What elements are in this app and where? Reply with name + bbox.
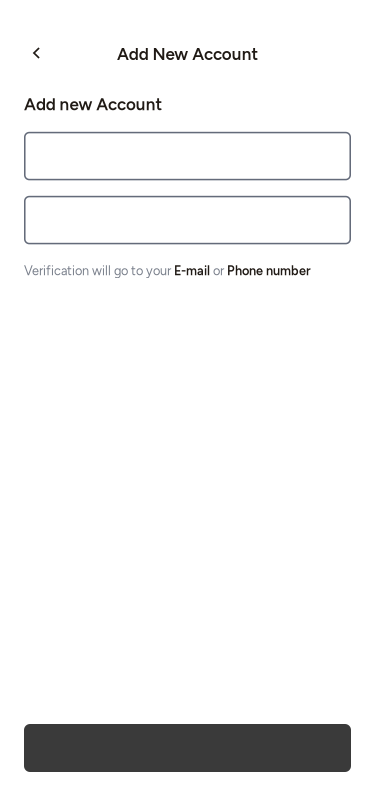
- button[interactable]: Continue: [24, 724, 351, 772]
- button[interactable]: Text field: [24, 196, 351, 244]
- staticText: or: [213, 263, 224, 278]
- staticText: Add new Account: [24, 94, 163, 114]
- staticText: Phone number: [227, 263, 311, 278]
- button[interactable]: Back: [14, 31, 58, 75]
- button[interactable]: Text field: [24, 132, 351, 180]
- staticText: Add New Account: [117, 44, 258, 64]
- staticText: Verification will go to your: [24, 263, 171, 278]
- staticText: E-mail: [174, 263, 210, 278]
